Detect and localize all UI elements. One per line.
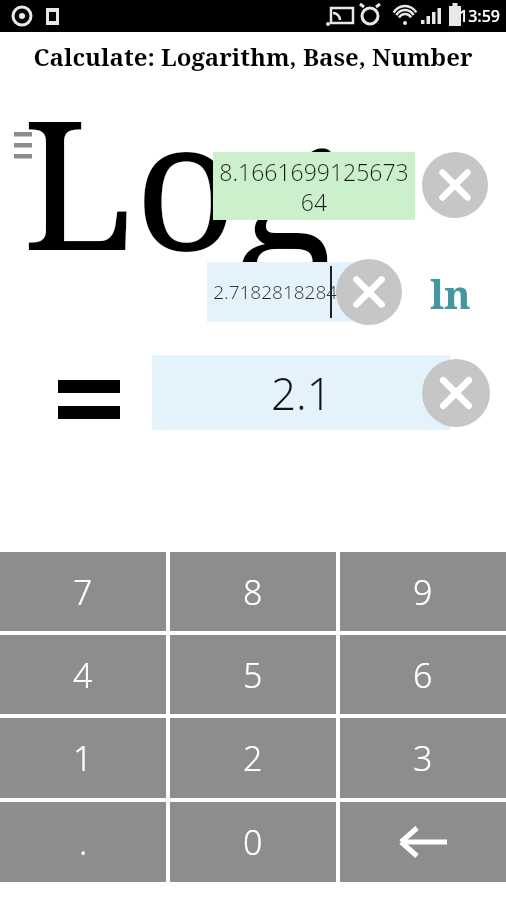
staticText: 13:59 [459, 5, 500, 27]
button[interactable]: 2 [170, 718, 336, 798]
staticText: 2.718281828459 [213, 279, 359, 305]
button[interactable]: 6 [340, 635, 506, 714]
staticText: Log [22, 58, 335, 303]
button[interactable]: 0 [170, 802, 336, 882]
button[interactable]: Clear [422, 152, 488, 218]
staticText: 1 [73, 735, 93, 781]
button[interactable]: 2.1 [152, 355, 450, 430]
button[interactable]: 9 [340, 552, 506, 631]
staticText: 8 [243, 569, 263, 615]
button[interactable]: Clear [336, 259, 402, 325]
button[interactable]: 8.166169912567364 [213, 152, 415, 220]
staticText: 3 [413, 735, 433, 781]
staticText: ln [430, 266, 471, 320]
button[interactable]: 7 [0, 552, 166, 631]
staticText: 2 [243, 735, 263, 781]
button[interactable]: 8 [170, 552, 336, 631]
staticText: Calculate: Logarithm, Base, Number [0, 40, 506, 73]
staticText: 5 [243, 652, 263, 698]
staticText: 8.166169912567364 [219, 156, 409, 217]
staticText: 2.1 [271, 363, 332, 423]
button[interactable]: 3 [340, 718, 506, 798]
staticText: . [79, 819, 88, 865]
staticText: 9 [413, 569, 433, 615]
staticText: 4 [73, 652, 93, 698]
staticText: 0 [243, 819, 263, 865]
button[interactable]: Menu [6, 120, 40, 154]
staticText: 7 [73, 569, 93, 615]
button[interactable]: 4 [0, 635, 166, 714]
button[interactable] [340, 802, 506, 882]
button[interactable]: Clear [422, 359, 490, 427]
button[interactable]: 1 [0, 718, 166, 798]
staticText: 6 [413, 652, 433, 698]
button[interactable]: 2.718281828459 [207, 262, 365, 322]
button[interactable]: 5 [170, 635, 336, 714]
